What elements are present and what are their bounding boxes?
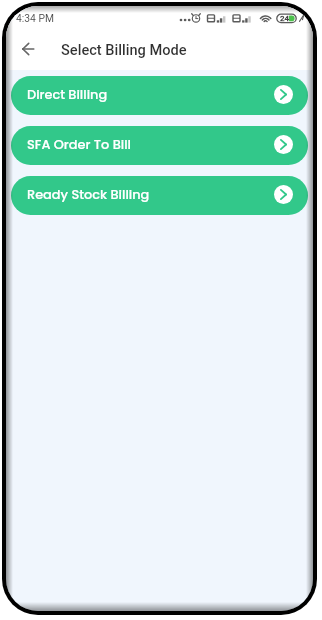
staticText: Ready Stock Billing [27, 185, 150, 203]
button[interactable]: Ready Stock Billing [11, 176, 308, 215]
button[interactable]: Back [12, 33, 44, 65]
staticText: 4:34 PM [16, 12, 54, 24]
button[interactable]: Direct Billing [11, 76, 308, 115]
staticText: 24 [280, 14, 290, 23]
staticText: Select Billing Mode [61, 41, 187, 58]
button[interactable]: SFA Order To Bill [11, 126, 308, 165]
staticText: SFA Order To Bill [27, 135, 131, 153]
staticText: Direct Billing [27, 85, 108, 103]
